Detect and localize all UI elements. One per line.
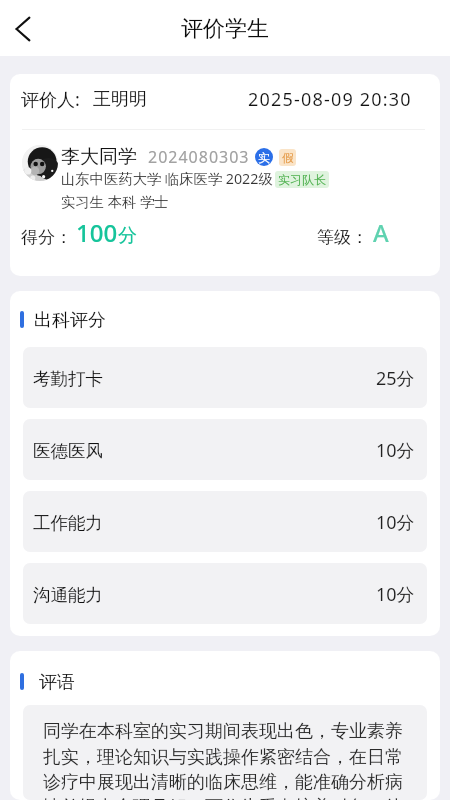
button[interactable]: 医德医风 <box>23 419 427 480</box>
staticText: 假 <box>282 151 294 165</box>
staticText: 李大同学 <box>61 145 137 169</box>
staticText: 实 <box>258 150 270 165</box>
staticText: 2024080303 <box>148 146 250 168</box>
staticText: 分 <box>118 224 137 248</box>
staticText: 评价学生 <box>181 15 269 43</box>
staticText: 沟通能力 <box>33 584 103 606</box>
staticText: 10分 <box>376 582 415 607</box>
staticText: 评价人: <box>21 87 80 112</box>
staticText: 医德医风 <box>33 440 103 462</box>
staticText: 10分 <box>376 438 415 463</box>
staticText: 王明明 <box>93 88 147 111</box>
staticText: 同学在本科室的实习期间表现出色，专业素养扎实，理论知识与实践操作紧密结合，在日常… <box>43 720 409 800</box>
staticText: 等级： <box>317 227 368 248</box>
staticText: 2025-08-09 20:30 <box>248 87 412 112</box>
staticText: 实习队长 <box>278 172 326 187</box>
button[interactable]: 沟通能力 <box>23 563 427 624</box>
staticText: 10分 <box>376 510 415 535</box>
staticText: 考勤打卡 <box>33 368 103 390</box>
staticText: 实习生 本科 学士 <box>61 192 169 212</box>
button[interactable]: 考勤打卡 <box>23 347 427 408</box>
staticText: 得分： <box>21 227 72 248</box>
button[interactable]: Back <box>0 6 44 50</box>
staticText: 山东中医药大学 临床医学 2022级 <box>61 169 273 189</box>
button[interactable]: 工作能力 <box>23 491 427 552</box>
staticText: 出科评分 <box>34 309 106 332</box>
staticText: 25分 <box>376 366 415 391</box>
staticText: A <box>373 216 389 249</box>
staticText: 工作能力 <box>33 512 103 534</box>
staticText: 100 <box>76 216 118 249</box>
staticText: 评语 <box>39 671 75 694</box>
